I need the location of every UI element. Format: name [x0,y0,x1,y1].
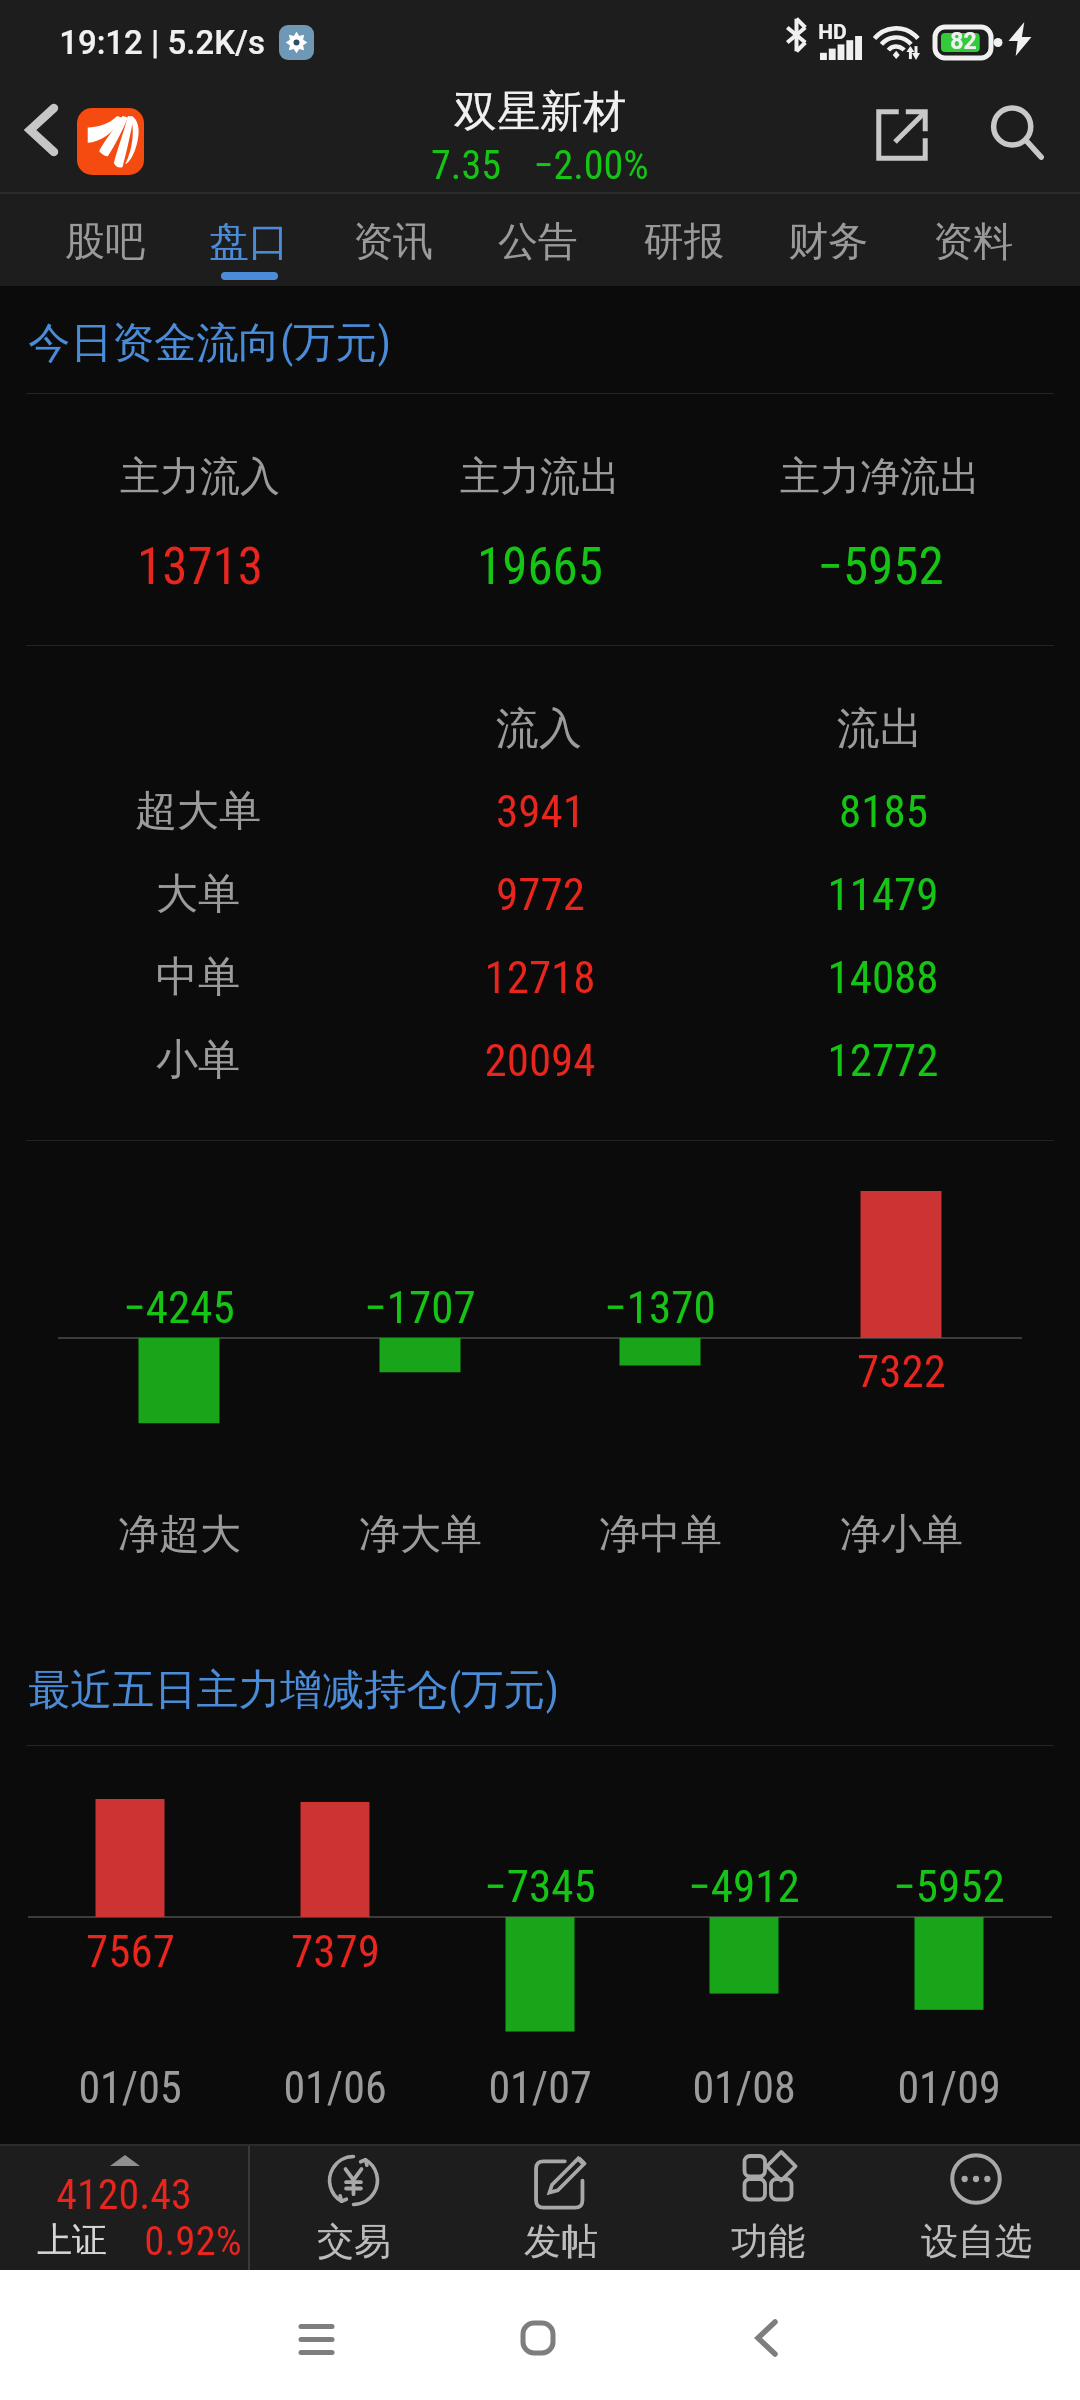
staticText: 12772 [827,1034,939,1087]
staticText: 7.35 [431,142,501,189]
staticText: 盘口 [209,216,289,266]
button[interactable]: 资讯 [321,192,465,286]
staticText: 19665 [477,537,603,597]
button[interactable]: 公告 [466,192,610,286]
staticText: 研报 [644,216,724,266]
staticText: 小单 [156,1034,240,1087]
button[interactable]: Back [721,2292,812,2383]
staticText: 净大单 [359,1509,482,1561]
staticText: 14088 [827,951,939,1004]
staticText: 20094 [484,1034,596,1087]
staticText: 4120.43 [56,2170,192,2219]
staticText: 19:12 | 5.2K/s [59,23,265,62]
staticText: 交易 [317,2218,391,2265]
staticText: 上证 [37,2218,107,2262]
staticText: −4245 [123,1281,235,1334]
staticText: 主力流出 [460,451,620,501]
staticText: 双星新材 [454,85,626,139]
button[interactable]: 研报 [612,192,756,286]
button[interactable]: App home [77,108,144,175]
button[interactable]: Search [961,85,1075,192]
staticText: 7322 [857,1345,946,1398]
staticText: −1707 [364,1281,476,1334]
button[interactable]: Back [0,85,77,192]
staticText: 01/08 [692,2062,796,2114]
staticText: 最近五日主力增减持仓(万元) [28,1664,559,1717]
staticText: −4912 [688,1860,800,1913]
staticText: 超大单 [135,785,261,838]
staticText: 01/05 [78,2062,182,2114]
staticText: 9772 [496,868,585,921]
button[interactable]: 盘口 [177,192,321,286]
staticText: 主力净流出 [780,451,980,501]
button[interactable]: 发帖 [457,2146,664,2270]
staticText: 股吧 [65,216,145,266]
staticText: 发帖 [524,2218,598,2265]
staticText: 财务 [788,216,868,266]
staticText: 13713 [137,537,263,597]
button[interactable]: 股吧 [33,192,177,286]
staticText: 7379 [291,1925,380,1978]
staticText: 设自选 [921,2218,1032,2265]
staticText: −5952 [817,537,944,597]
staticText: HD [818,20,847,45]
staticText: −7345 [484,1860,596,1913]
staticText: 大单 [156,868,240,921]
staticText: 01/06 [283,2062,387,2114]
staticText: 资讯 [353,216,433,266]
staticText: −2.00% [533,142,649,189]
staticText: 主力流入 [120,451,280,501]
staticText: 01/09 [897,2062,1001,2114]
button[interactable]: Home [492,2292,583,2383]
staticText: 净小单 [840,1509,963,1561]
staticText: 中单 [156,951,240,1004]
staticText: 净超大 [118,1509,241,1561]
staticText: 01/07 [488,2062,592,2114]
button[interactable]: Share [848,85,956,192]
staticText: 公告 [498,216,578,266]
staticText: 12718 [484,951,596,1004]
button[interactable]: 财务 [756,192,900,286]
button[interactable]: Recent apps [271,2292,362,2383]
staticText: 流入 [496,702,582,756]
staticText: 82 [950,28,977,55]
staticText: 今日资金流向(万元) [28,317,391,370]
button[interactable]: 交易 [250,2146,457,2270]
button[interactable]: 设自选 [872,2146,1080,2270]
staticText: 11479 [827,868,939,921]
staticText: 3941 [496,785,585,838]
button[interactable]: 功能 [664,2146,872,2270]
staticText: 0.92% [144,2217,242,2265]
staticText: −1370 [604,1281,716,1334]
staticText: 8185 [839,785,928,838]
staticText: 7567 [86,1925,175,1978]
staticText: −5952 [893,1860,1005,1913]
staticText: 功能 [731,2218,805,2265]
button[interactable]: 资料 [901,192,1045,286]
staticText: 资料 [933,216,1013,266]
staticText: 净中单 [599,1509,722,1561]
button[interactable]: 4120.43 [0,2146,248,2270]
staticText: 流出 [837,702,923,756]
